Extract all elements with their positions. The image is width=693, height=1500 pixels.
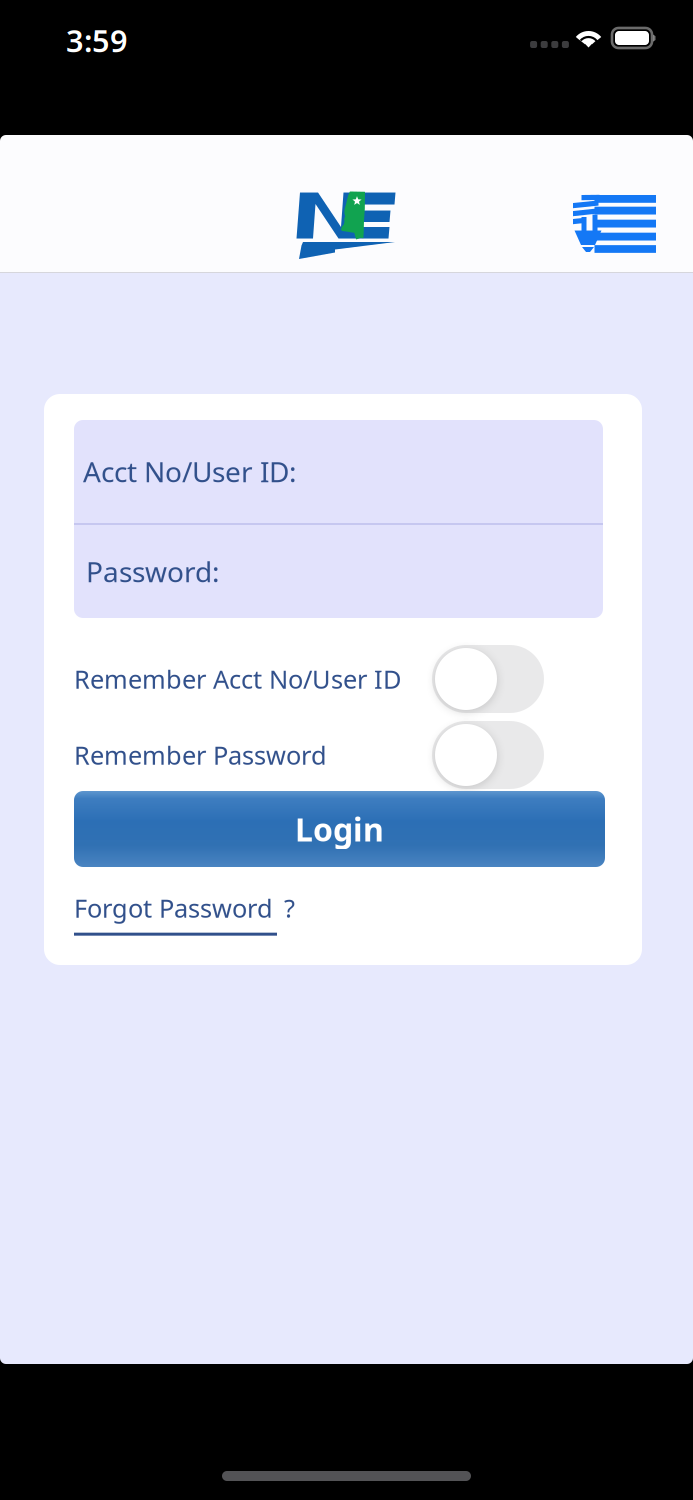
staticText: Password:	[86, 553, 220, 590]
staticText: 3:59	[66, 20, 128, 61]
staticText: Forgot Password	[74, 891, 273, 925]
button[interactable]: Forgot Password	[74, 891, 603, 946]
staticText: Login	[295, 808, 384, 850]
button[interactable]: Password:	[74, 525, 603, 618]
staticText: ?	[277, 891, 295, 925]
button[interactable]: Login	[74, 791, 605, 867]
staticText: Remember Password	[74, 738, 327, 772]
button[interactable]: Acct No/User ID:	[74, 420, 603, 523]
button[interactable]: SmartHub	[573, 195, 656, 252]
staticText: Acct No/User ID:	[83, 453, 297, 490]
button[interactable]: Remember Password	[432, 721, 544, 789]
staticText: Remember Acct No/User ID	[74, 662, 401, 696]
button[interactable]: Remember Acct No/User ID	[432, 645, 544, 713]
